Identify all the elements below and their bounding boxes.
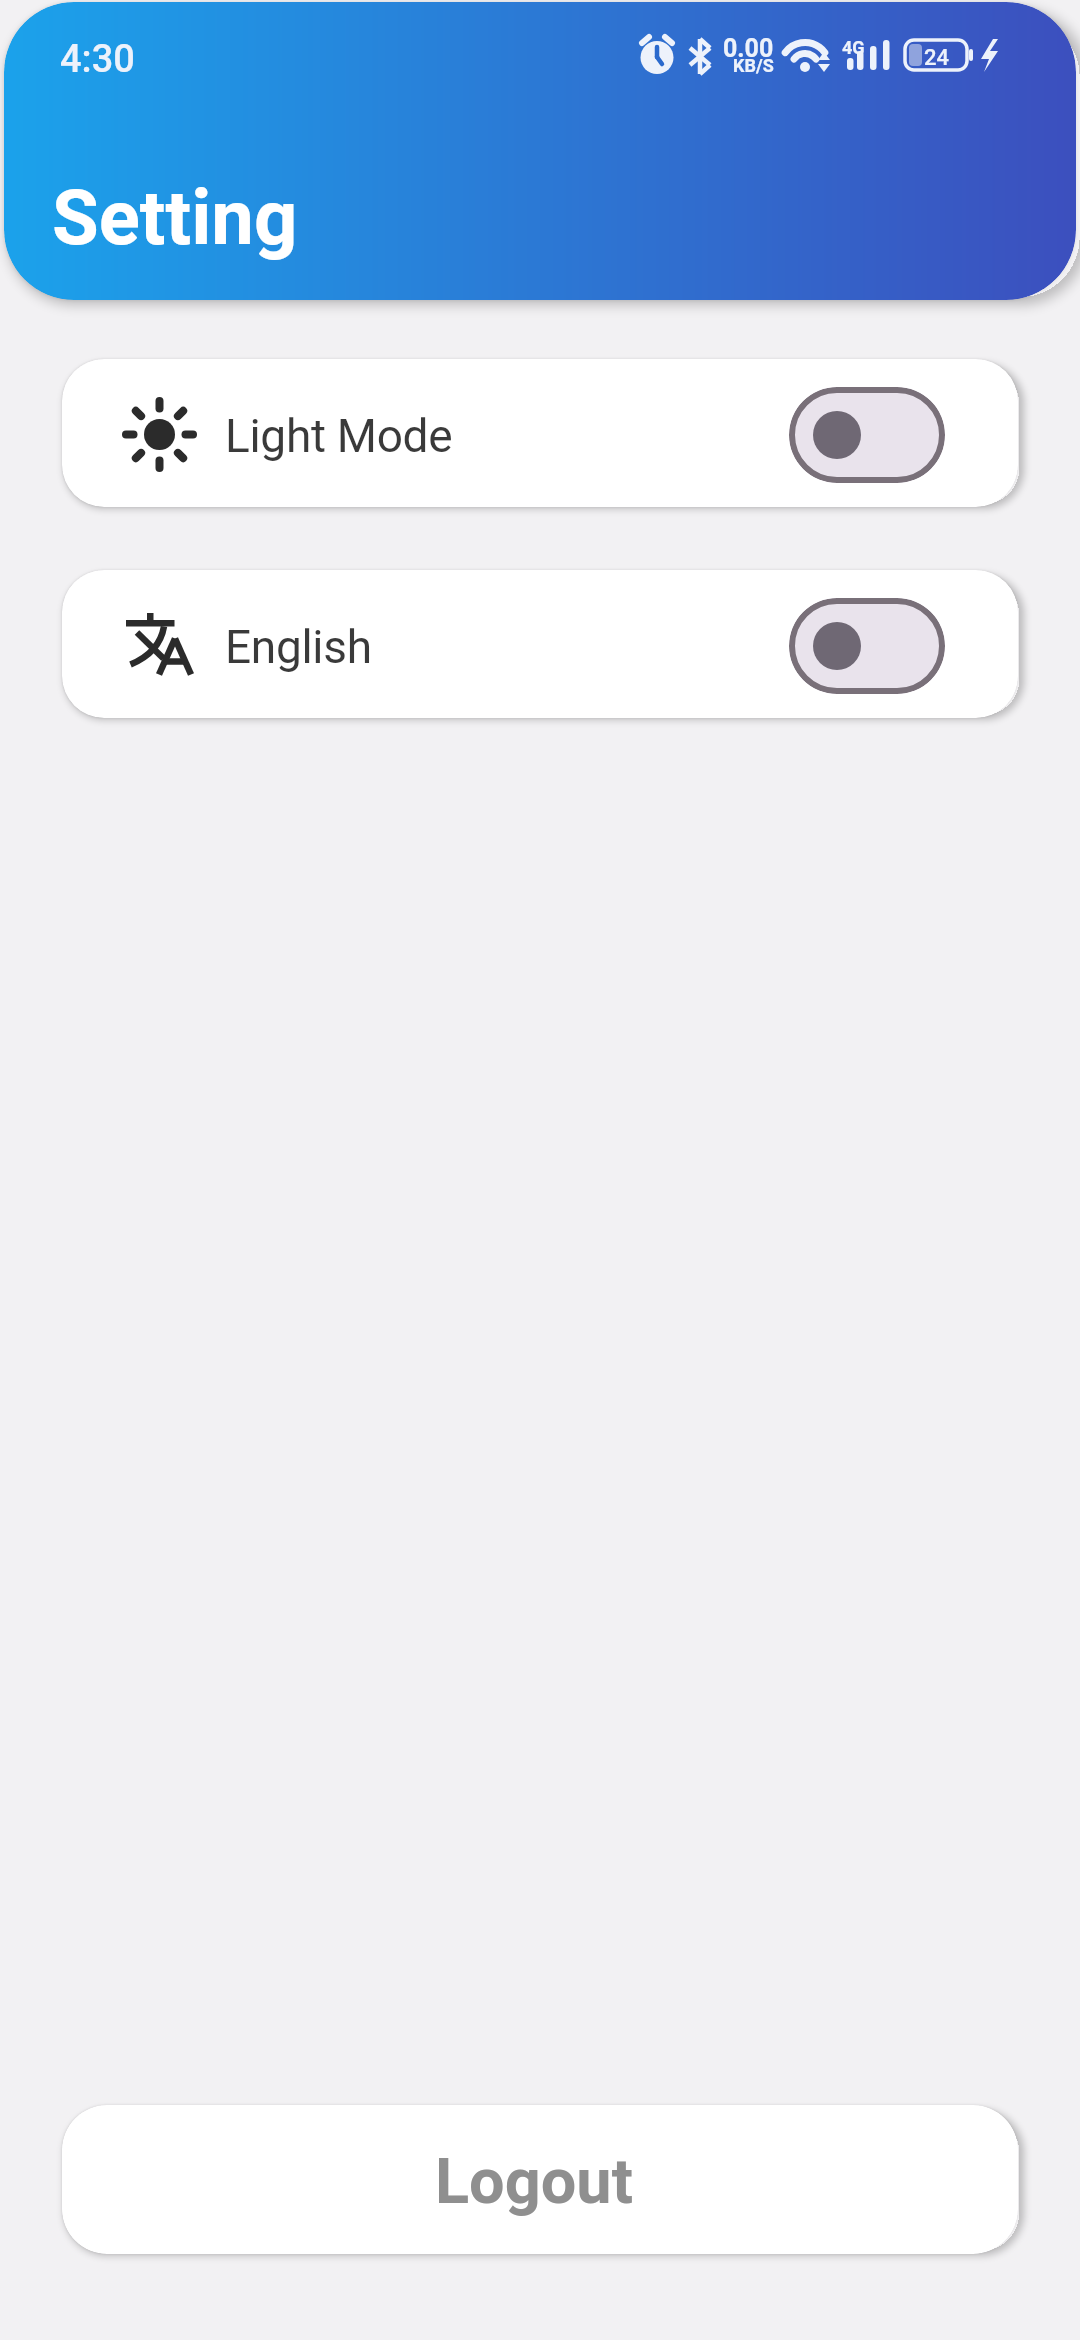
staticText: Logout [435, 2145, 633, 2219]
button[interactable] [789, 387, 945, 483]
button[interactable] [789, 598, 945, 694]
button[interactable]: Light Mode [62, 359, 1018, 507]
staticText: 4G [842, 37, 865, 58]
staticText: Setting [52, 173, 298, 262]
staticText: 0.00 [723, 34, 774, 63]
button[interactable]: English [62, 570, 1018, 718]
staticText: KB/S [733, 55, 774, 76]
staticText: Light Mode [225, 409, 453, 463]
staticText: 4:30 [60, 37, 135, 82]
button[interactable]: Logout [62, 2105, 1018, 2254]
staticText: English [225, 620, 372, 674]
staticText: 24 [924, 45, 950, 71]
